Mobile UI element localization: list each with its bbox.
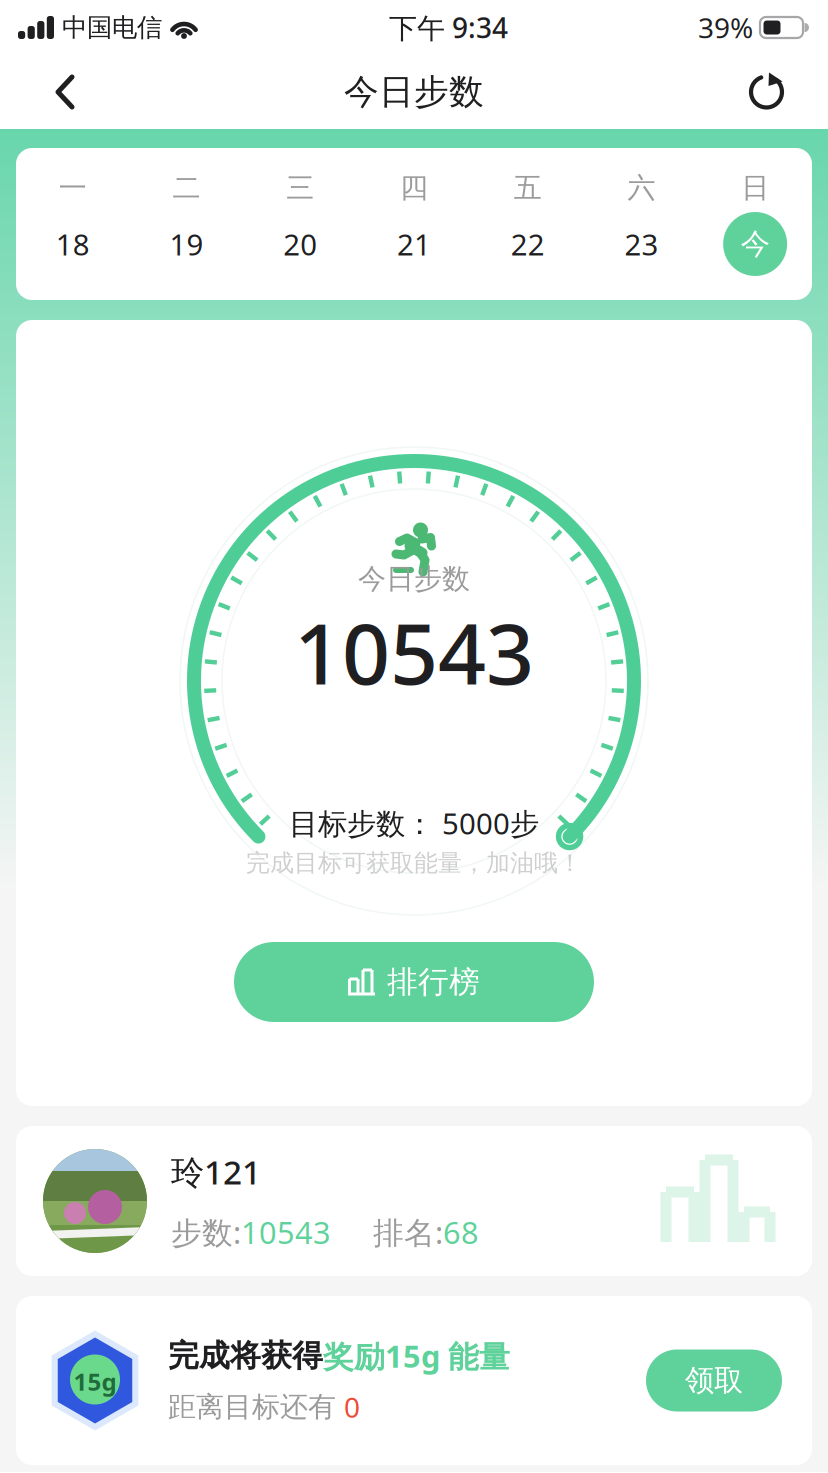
staticText: 15g [73,1366,116,1397]
button[interactable]: 五 [471,174,585,276]
button[interactable]: 日 [698,174,812,276]
button[interactable]: 玲121 [16,1126,812,1276]
staticText: 今 [741,226,770,262]
staticText: 三 [286,171,314,205]
staticText: 下午 9:34 [389,9,508,46]
staticText: 22 [511,224,545,263]
button[interactable]: 三 [243,174,357,276]
button[interactable]: 返回 [34,61,96,123]
staticText: 完成将获得 [168,1337,323,1375]
staticText: 一 [59,171,87,205]
button[interactable]: 一 [16,174,130,276]
staticText: 23 [624,224,658,263]
staticText: 五 [514,171,542,205]
staticText: 完成目标可获取能量，加油哦！ [246,848,582,878]
staticText: 奖励15g 能量 [323,1335,510,1376]
staticText: 18 [56,224,90,263]
staticText: 今日步数 [358,562,470,596]
staticText: 玲121 [171,1149,261,1194]
staticText: 19 [170,224,204,263]
staticText: 日 [741,171,769,205]
button[interactable]: 六 [585,174,698,276]
staticText: 六 [627,171,655,205]
staticText: 目标步数： 5000步 [289,803,539,842]
staticText: 二 [173,171,201,205]
staticText: 0 [344,1388,360,1425]
staticText: 排名: [373,1212,443,1252]
staticText: 21 [397,224,431,263]
button[interactable]: 四 [357,174,471,276]
button[interactable]: 刷新 [736,61,798,123]
staticText: 20 [283,224,317,263]
staticText: 10543 [294,596,534,708]
staticText: 中国电信 [62,12,162,43]
staticText: 距离目标还有 [168,1390,344,1424]
staticText: 步数: [171,1212,241,1252]
staticText: 10543 [241,1212,331,1252]
staticText: 排行榜 [387,963,480,1001]
staticText: 领取 [685,1362,743,1398]
staticText: 68 [443,1212,479,1252]
button[interactable]: 领取 [646,1349,782,1411]
button[interactable]: 排行榜 [234,942,594,1022]
staticText: 39% [698,9,753,46]
button[interactable]: 二 [130,174,243,276]
staticText: 今日步数 [344,71,484,113]
staticText: 四 [400,171,428,205]
